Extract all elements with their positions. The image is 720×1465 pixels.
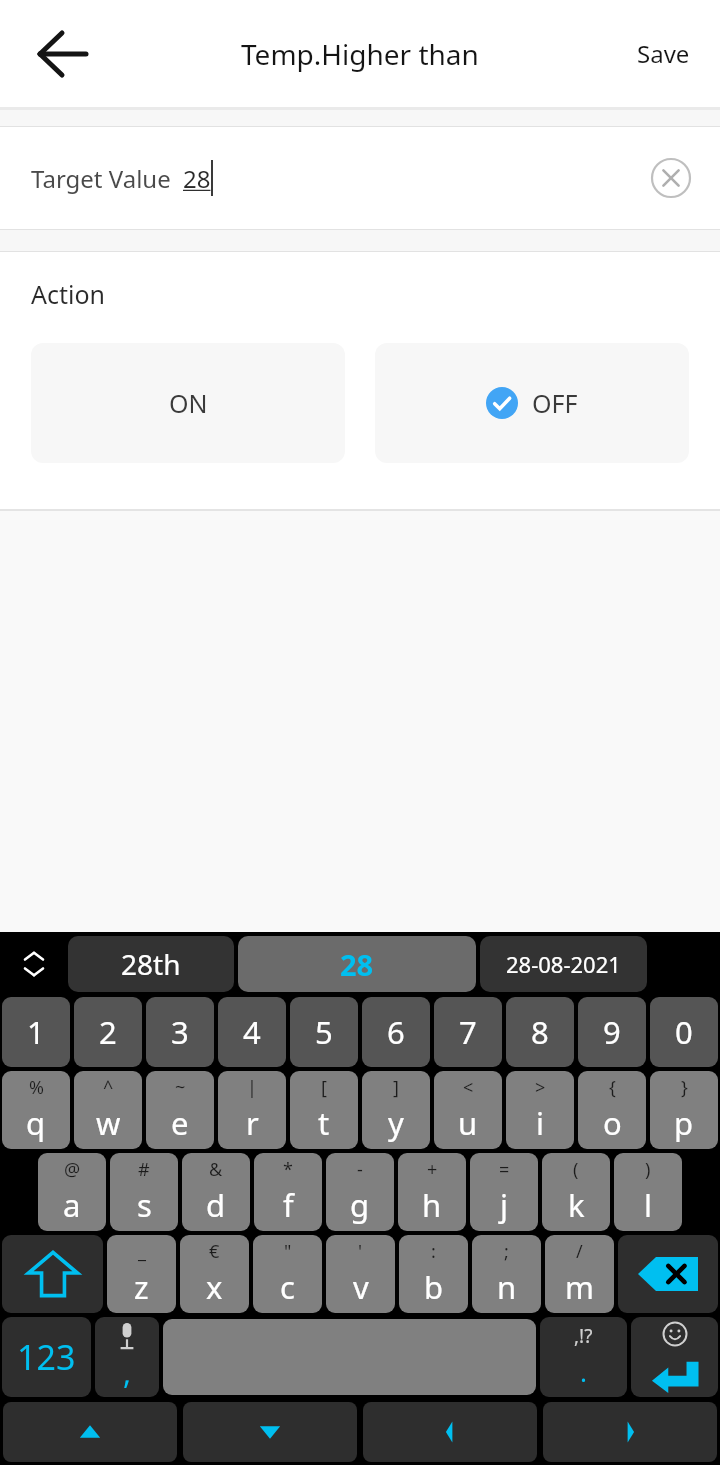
button[interactable]: / — [545, 1235, 614, 1313]
button[interactable]: Up — [3, 1402, 177, 1462]
staticText: 0 — [675, 1011, 693, 1053]
staticText: h — [422, 1184, 442, 1226]
staticText: i — [536, 1102, 544, 1144]
staticText: t — [318, 1102, 330, 1144]
staticText: 7 — [459, 1011, 477, 1053]
staticText: c — [280, 1266, 295, 1308]
staticText: } — [681, 1075, 688, 1100]
button[interactable]: More suggestions — [0, 932, 68, 995]
button[interactable]: 123 — [2, 1317, 91, 1397]
staticText: e — [171, 1102, 189, 1144]
button[interactable]: Punctuation — [540, 1317, 627, 1397]
button[interactable]: ON — [31, 343, 345, 463]
button[interactable]: Save — [637, 37, 690, 70]
staticText: o — [603, 1102, 622, 1144]
button[interactable]: * — [254, 1153, 322, 1231]
staticText: / — [576, 1239, 583, 1264]
button[interactable]: Enter — [631, 1317, 718, 1397]
button[interactable]: 9 — [578, 997, 646, 1067]
staticText: b — [424, 1266, 444, 1308]
staticText: n — [497, 1266, 517, 1308]
staticText: _ — [138, 1239, 146, 1264]
staticText: ^ — [103, 1075, 114, 1100]
staticText: ' — [358, 1239, 363, 1264]
staticText: v — [353, 1266, 369, 1308]
button[interactable]: 1 — [2, 997, 70, 1067]
button[interactable]: ' — [326, 1235, 395, 1313]
button[interactable]: 28 — [238, 936, 476, 992]
button[interactable]: < — [434, 1071, 502, 1149]
staticText: , — [123, 1352, 132, 1393]
button[interactable]: 3 — [146, 997, 214, 1067]
button[interactable]: 28th — [68, 936, 234, 992]
staticText: p — [674, 1102, 694, 1144]
button[interactable]: - — [326, 1153, 394, 1231]
button[interactable]: [ — [290, 1071, 358, 1149]
button[interactable]: = — [470, 1153, 538, 1231]
staticText: > — [535, 1075, 546, 1100]
button[interactable]: 4 — [218, 997, 286, 1067]
button[interactable]: ; — [472, 1235, 541, 1313]
staticText: Temp.Higher than — [241, 35, 479, 73]
button[interactable]: 0 — [650, 997, 718, 1067]
staticText: u — [458, 1102, 478, 1144]
staticText: g — [350, 1184, 370, 1226]
staticText: Action — [31, 277, 106, 311]
staticText: Save — [637, 37, 690, 70]
button[interactable]: Down — [183, 1402, 357, 1462]
button[interactable]: : — [399, 1235, 468, 1313]
staticText: 9 — [603, 1011, 621, 1053]
button[interactable]: ) — [614, 1153, 682, 1231]
button[interactable]: { — [578, 1071, 646, 1149]
button[interactable]: OFF — [375, 343, 689, 463]
button[interactable]: Backspace — [618, 1235, 718, 1313]
staticText: = — [499, 1157, 510, 1182]
button[interactable]: € — [180, 1235, 249, 1313]
staticText: # — [138, 1157, 150, 1182]
staticText: 1 — [27, 1011, 45, 1053]
button[interactable]: % — [2, 1071, 70, 1149]
button[interactable]: 5 — [290, 997, 358, 1067]
staticText: ,!? — [574, 1323, 593, 1349]
staticText: Target Value — [31, 162, 171, 195]
button[interactable]: Shift — [2, 1235, 103, 1313]
button[interactable]: Voice input and comma — [95, 1317, 159, 1397]
button[interactable]: 7 — [434, 997, 502, 1067]
button[interactable]: 8 — [506, 997, 574, 1067]
staticText: + — [427, 1157, 438, 1182]
staticText: @ — [64, 1157, 81, 1182]
staticText: 3 — [171, 1011, 189, 1053]
button[interactable]: 2 — [74, 997, 142, 1067]
staticText: 5 — [315, 1011, 333, 1053]
button[interactable]: # — [110, 1153, 178, 1231]
button[interactable]: 6 — [362, 997, 430, 1067]
staticText: 28th — [121, 945, 181, 983]
staticText: * — [283, 1157, 293, 1182]
button[interactable]: > — [506, 1071, 574, 1149]
staticText: ON — [169, 386, 208, 420]
button[interactable]: _ — [107, 1235, 176, 1313]
button[interactable]: " — [253, 1235, 322, 1313]
button[interactable]: ~ — [146, 1071, 214, 1149]
button[interactable]: Right — [543, 1402, 717, 1462]
staticText: s — [137, 1184, 152, 1226]
button[interactable]: | — [218, 1071, 286, 1149]
staticText: 2 — [99, 1011, 117, 1053]
button[interactable]: Left — [363, 1402, 537, 1462]
button[interactable]: + — [398, 1153, 466, 1231]
button[interactable]: ^ — [74, 1071, 142, 1149]
button[interactable]: & — [182, 1153, 250, 1231]
staticText: r — [246, 1102, 259, 1144]
button[interactable]: Clear — [648, 155, 694, 201]
button[interactable]: ( — [542, 1153, 610, 1231]
button[interactable]: Back — [26, 18, 98, 90]
staticText: - — [357, 1157, 363, 1182]
button[interactable]: @ — [38, 1153, 106, 1231]
staticText: OFF — [532, 386, 578, 420]
button[interactable]: ] — [362, 1071, 430, 1149]
staticText: " — [284, 1239, 292, 1264]
button[interactable]: Space — [163, 1319, 536, 1395]
staticText: ] — [393, 1075, 399, 1100]
button[interactable]: 28-08-2021 — [480, 936, 647, 992]
button[interactable]: } — [650, 1071, 718, 1149]
